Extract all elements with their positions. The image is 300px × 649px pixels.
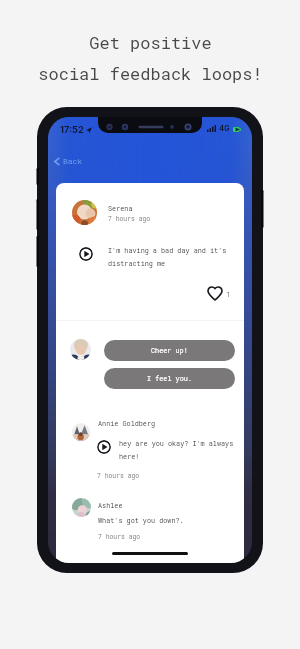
staticText: I feel you. xyxy=(147,374,192,383)
button[interactable]: Play voice message xyxy=(97,440,111,454)
staticText: 7 hours ago xyxy=(108,214,151,222)
button[interactable]: Like xyxy=(208,287,231,300)
button[interactable]: I feel you. xyxy=(104,368,235,389)
staticText: Ashlee xyxy=(98,501,123,510)
staticText: 1 xyxy=(226,289,231,298)
button[interactable]: Cheer up! xyxy=(104,340,235,361)
staticText: hey are you okay? I'm always here! xyxy=(119,439,234,460)
staticText: 7 hours ago xyxy=(98,532,141,540)
staticText: Serena xyxy=(108,204,133,213)
staticText: Annie Goldberg xyxy=(98,419,156,428)
staticText: I'm having a bad day and it's distractin… xyxy=(108,246,227,267)
staticText: 17:52 xyxy=(60,124,84,135)
staticText: Cheer up! xyxy=(151,346,188,355)
staticText: Get positive xyxy=(89,31,212,53)
staticText: Back xyxy=(63,156,83,167)
staticText: 4G xyxy=(219,124,230,133)
button[interactable]: Play voice message xyxy=(79,247,93,261)
button[interactable]: Back xyxy=(51,153,86,170)
staticText: What's got you down?. xyxy=(98,516,184,525)
staticText: social feedback loops! xyxy=(38,62,263,84)
staticText: 7 hours ago xyxy=(97,471,140,479)
